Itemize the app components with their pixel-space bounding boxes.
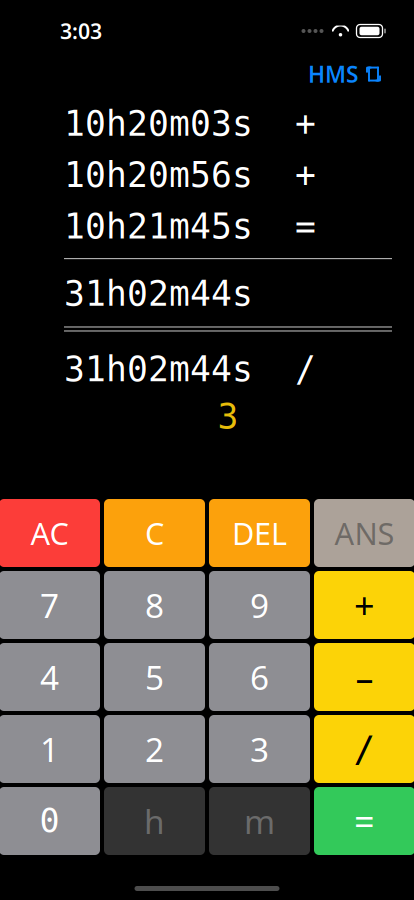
staticText: 3 (250, 727, 269, 771)
staticText: 6 (250, 655, 269, 699)
staticText: 3:03 (60, 17, 102, 45)
staticText: ANS (334, 513, 394, 553)
button[interactable]: ANS (314, 499, 414, 567)
button[interactable]: 4 (0, 643, 100, 711)
button[interactable]: 7 (0, 571, 100, 639)
button[interactable]: Toggle HMS format (304, 56, 388, 92)
staticText: 8 (145, 583, 164, 627)
button[interactable]: 3 (209, 715, 310, 783)
staticText: = (354, 797, 375, 845)
staticText: 10h21m45s = (64, 207, 316, 246)
staticText: 10h20m56s + (64, 155, 316, 195)
staticText: / (353, 729, 375, 769)
button[interactable]: m (209, 787, 310, 855)
button[interactable]: 8 (104, 571, 205, 639)
staticText: 31h02m44s (64, 274, 253, 313)
staticText: 4 (40, 655, 59, 699)
staticText: C (145, 513, 164, 553)
button[interactable]: 0 (0, 787, 100, 855)
staticText: 10h20m03s + (64, 104, 316, 143)
button[interactable]: = (314, 787, 414, 855)
staticText: 9 (250, 583, 269, 627)
button[interactable]: / (314, 715, 414, 783)
staticText: 31h02m44s / (64, 349, 316, 389)
button[interactable]: 1 (0, 715, 100, 783)
button[interactable]: 6 (209, 643, 310, 711)
button[interactable]: C (104, 499, 205, 567)
staticText: – (355, 653, 373, 701)
button[interactable]: + (314, 571, 414, 639)
staticText: AC (30, 513, 68, 553)
button[interactable]: 2 (104, 715, 205, 783)
button[interactable]: DEL (209, 499, 310, 567)
staticText: HMS (308, 59, 358, 89)
staticText: 0 (39, 802, 59, 840)
button[interactable]: h (104, 787, 205, 855)
button[interactable]: – (314, 643, 414, 711)
staticText: + (354, 581, 375, 629)
button[interactable]: 9 (209, 571, 310, 639)
button[interactable]: 5 (104, 643, 205, 711)
staticText: 3 (217, 397, 238, 436)
staticText: DEL (232, 513, 287, 553)
staticText: h (144, 799, 165, 843)
staticText: 2 (145, 727, 164, 771)
staticText: 5 (145, 655, 164, 699)
button[interactable]: AC (0, 499, 100, 567)
staticText: m (244, 799, 275, 843)
staticText: 7 (40, 583, 59, 627)
staticText: 1 (40, 727, 59, 771)
